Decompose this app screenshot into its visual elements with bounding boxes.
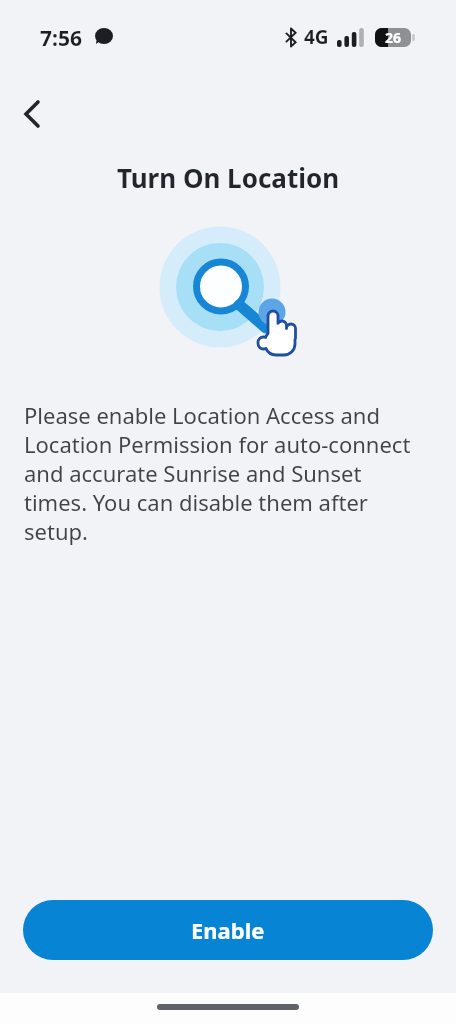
button[interactable]: Enable — [23, 900, 433, 960]
staticText: 4G — [304, 24, 329, 50]
staticText: Please enable Location Access and Locati… — [24, 400, 411, 546]
staticText: Enable — [191, 915, 265, 945]
staticText: 26 — [385, 28, 402, 47]
staticText: 7:56 — [40, 24, 82, 50]
staticText: Turn On Location — [117, 160, 340, 195]
button[interactable] — [10, 92, 54, 136]
